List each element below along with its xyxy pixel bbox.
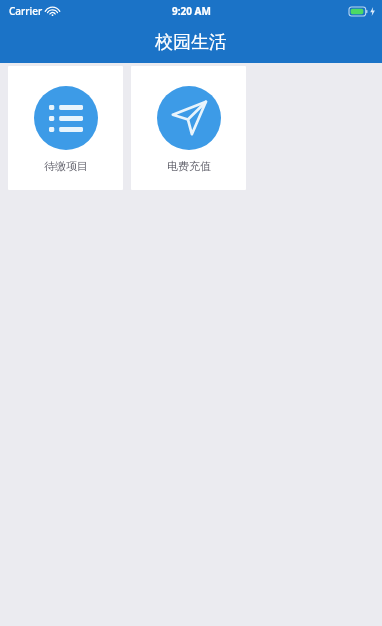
button[interactable]: 电费充值 bbox=[131, 66, 246, 190]
staticText: Carrier bbox=[9, 4, 43, 18]
staticText: 待缴项目 bbox=[44, 159, 88, 173]
staticText: 校园生活 bbox=[155, 31, 227, 54]
staticText: 电费充值 bbox=[167, 159, 211, 173]
button[interactable]: 待缴项目 bbox=[8, 66, 123, 190]
staticText: 9:20 AM bbox=[172, 4, 211, 18]
